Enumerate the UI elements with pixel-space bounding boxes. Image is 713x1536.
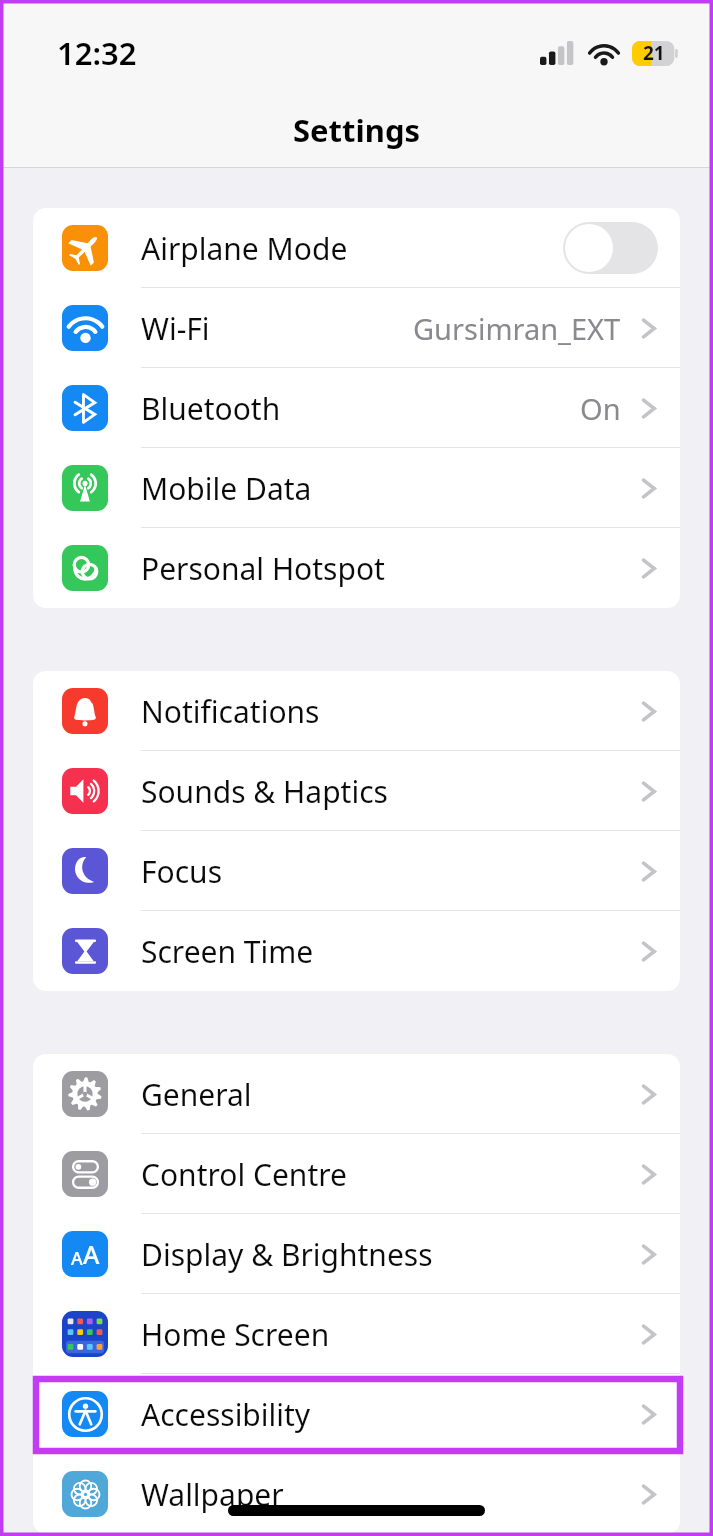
staticText: Screen Time bbox=[141, 931, 314, 972]
button[interactable]: Notifications bbox=[33, 671, 680, 751]
button[interactable]: A bbox=[33, 1214, 680, 1294]
button[interactable]: Focus bbox=[33, 831, 680, 911]
staticText: Display & Brightness bbox=[141, 1234, 433, 1275]
button[interactable]: Airplane Mode bbox=[33, 208, 680, 288]
staticText: Settings bbox=[293, 109, 421, 151]
button[interactable]: Wi-Fi bbox=[33, 288, 680, 368]
staticText: Personal Hotspot bbox=[141, 548, 385, 589]
staticText: Wallpaper bbox=[141, 1474, 284, 1515]
button[interactable]: Sounds & Haptics bbox=[33, 751, 680, 831]
staticText: Focus bbox=[141, 851, 223, 892]
staticText: Airplane Mode bbox=[141, 228, 348, 269]
staticText: Notifications bbox=[141, 691, 320, 732]
staticText: General bbox=[141, 1074, 252, 1115]
staticText: Home Screen bbox=[141, 1314, 330, 1355]
staticText: 12:32 bbox=[57, 32, 137, 74]
staticText: Bluetooth bbox=[141, 388, 281, 429]
button[interactable]: Accessibility bbox=[33, 1374, 680, 1454]
button[interactable]: Personal Hotspot bbox=[33, 528, 680, 608]
staticText: A bbox=[71, 1246, 83, 1271]
button[interactable]: General bbox=[33, 1054, 680, 1134]
staticText: On bbox=[580, 389, 621, 428]
staticText: Control Centre bbox=[141, 1154, 347, 1195]
staticText: A bbox=[83, 1237, 100, 1271]
button[interactable]: Control Centre bbox=[33, 1134, 680, 1214]
staticText: Gursimran_EXT bbox=[413, 309, 621, 348]
staticText: Sounds & Haptics bbox=[141, 771, 388, 812]
button[interactable]: Airplane Mode switch, off bbox=[563, 222, 658, 274]
button[interactable]: Home Screen bbox=[33, 1294, 680, 1374]
staticText: 21 bbox=[643, 40, 665, 66]
button[interactable]: Wallpaper bbox=[33, 1454, 680, 1534]
button[interactable]: Screen Time bbox=[33, 911, 680, 991]
staticText: Wi-Fi bbox=[141, 308, 210, 349]
button[interactable]: Mobile Data bbox=[33, 448, 680, 528]
staticText: Accessibility bbox=[141, 1394, 311, 1435]
button[interactable]: Bluetooth bbox=[33, 368, 680, 448]
staticText: Mobile Data bbox=[141, 468, 312, 509]
